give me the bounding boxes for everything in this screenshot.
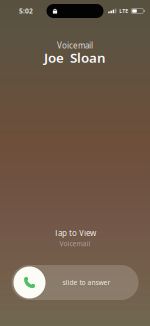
button[interactable]: Slide to answer (11, 265, 138, 300)
staticText: slide to answer (62, 278, 110, 287)
staticText: LTE (119, 7, 128, 15)
staticText: Voicemail (57, 40, 93, 51)
staticText: Joe Sloan (44, 49, 106, 66)
staticText: 5:02 (19, 7, 33, 15)
button[interactable]: Tap to View (0, 227, 150, 248)
staticText: Voicemail (59, 239, 90, 248)
staticText: Tap to View (54, 227, 96, 238)
